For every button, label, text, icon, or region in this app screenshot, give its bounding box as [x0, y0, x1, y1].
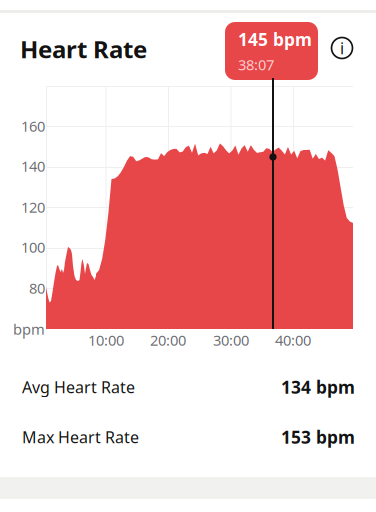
button[interactable]: Info — [327, 33, 357, 63]
staticText: 140 — [21, 156, 45, 176]
staticText: bpm — [13, 319, 45, 339]
staticText: 40:00 — [275, 330, 311, 350]
staticText: 10:00 — [88, 330, 124, 350]
staticText: Heart Rate — [20, 33, 147, 65]
staticText: Avg Heart Rate — [22, 376, 135, 398]
staticText: 30:00 — [213, 330, 249, 350]
staticText: 20:00 — [150, 330, 186, 350]
staticText: 134 bpm — [281, 375, 355, 398]
button[interactable]: Avg Heart Rate — [0, 362, 376, 412]
staticText: 100 — [21, 237, 45, 257]
staticText: 153 bpm — [281, 425, 355, 448]
staticText: 80 — [29, 278, 45, 298]
button[interactable]: Max Heart Rate — [0, 412, 376, 462]
staticText: Max Heart Rate — [22, 426, 139, 448]
staticText: 38:07 — [238, 55, 274, 74]
staticText: 145 bpm — [238, 28, 312, 51]
staticText: i — [340, 37, 344, 59]
staticText: 160 — [21, 116, 45, 136]
staticText: 120 — [21, 197, 45, 217]
button[interactable]: 145 bpm — [225, 22, 318, 80]
